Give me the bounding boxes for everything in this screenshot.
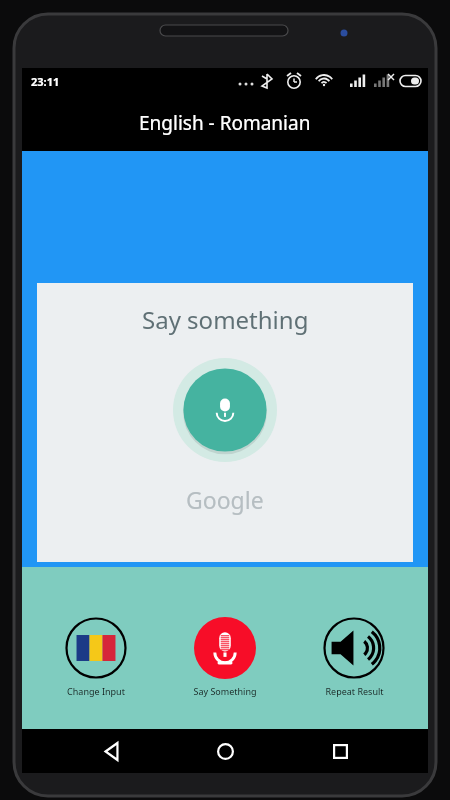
- button[interactable]: Home: [199, 729, 251, 773]
- button[interactable]: Back: [85, 729, 137, 773]
- button[interactable]: Say Something: [181, 617, 269, 697]
- button[interactable]: Say something: [37, 283, 413, 562]
- staticText: 23:11: [31, 74, 60, 89]
- staticText: Say something: [142, 303, 309, 336]
- staticText: Say Something: [193, 685, 257, 697]
- staticText: English - Romanian: [139, 110, 311, 136]
- staticText: Change Input: [67, 685, 125, 697]
- button[interactable]: Recent apps: [314, 729, 366, 773]
- staticText: Repeat Result: [325, 685, 384, 697]
- staticText: Google: [186, 484, 264, 515]
- button[interactable]: Repeat Result: [310, 617, 398, 697]
- button[interactable]: Listening: [173, 358, 277, 462]
- button[interactable]: Change Input: [52, 617, 140, 697]
